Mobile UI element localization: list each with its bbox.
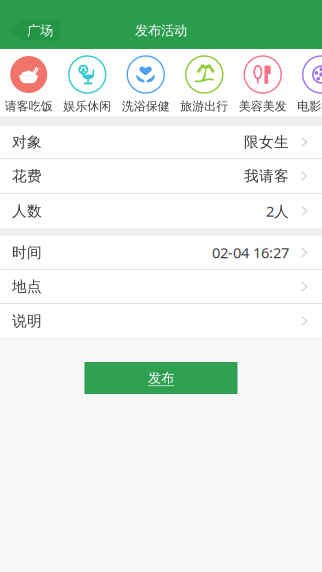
staticText: 美容美发 [239, 99, 287, 114]
button[interactable]: 人数 [0, 194, 322, 228]
button[interactable]: 洗浴保健 [116, 49, 175, 116]
button[interactable]: 对象 [0, 126, 322, 159]
staticText: 电影演出 [297, 99, 322, 114]
staticText: 娱乐休闲 [63, 99, 111, 114]
staticText: 限女生 [244, 133, 289, 151]
staticText: 02-04 16:27 [212, 243, 289, 262]
staticText: 地点 [12, 277, 42, 295]
button[interactable]: 娱乐休闲 [58, 49, 116, 116]
button[interactable]: 请客吃饭 [0, 49, 58, 116]
staticText: 对象 [12, 133, 42, 151]
button[interactable]: 美容美发 [233, 49, 292, 116]
staticText: 说明 [12, 312, 42, 330]
staticText: 广场 [27, 22, 53, 39]
staticText: 时间 [12, 243, 42, 261]
staticText: 人数 [12, 202, 42, 220]
button[interactable]: 花费 [0, 159, 322, 194]
button[interactable]: 地点 [0, 270, 322, 304]
staticText: 请客吃饭 [5, 99, 53, 114]
button[interactable]: 广场 [9, 20, 60, 41]
staticText: 发布 [148, 370, 174, 386]
staticText: 2人 [266, 201, 289, 221]
button[interactable]: 发布 [84, 362, 237, 394]
staticText: 洗浴保健 [122, 99, 170, 114]
button[interactable]: 电影演出 [292, 49, 322, 116]
staticText: 花费 [12, 167, 42, 185]
staticText: 发布活动 [135, 22, 187, 39]
button[interactable]: 旅游出行 [175, 49, 233, 116]
staticText: 我请客 [244, 167, 289, 185]
button[interactable]: 时间 [0, 236, 322, 270]
button[interactable]: 说明 [0, 304, 322, 338]
staticText: 旅游出行 [180, 99, 228, 114]
